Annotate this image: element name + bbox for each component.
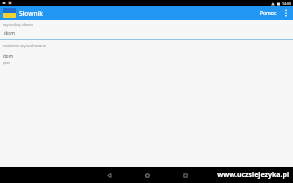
staticText: www.uczsiejezyka.pl [217, 170, 289, 180]
staticText: dom [4, 30, 15, 37]
staticText: 14:05 [282, 1, 291, 6]
button[interactable]: More options [281, 6, 291, 20]
staticText: дім [3, 60, 10, 66]
button[interactable]: App icon [3, 8, 16, 18]
button[interactable]: dom [0, 52, 293, 67]
staticText: Pomoc [260, 10, 277, 17]
button[interactable]: Home [134, 167, 160, 183]
button[interactable]: Pomoc [258, 8, 279, 19]
staticText: ostatnio wyszukiwane [3, 43, 47, 49]
button[interactable]: Recent apps [172, 167, 198, 183]
staticText: Słownik [19, 9, 43, 18]
staticText: wyszukaj słowo [3, 22, 34, 28]
button[interactable]: dom [0, 30, 293, 40]
button[interactable]: Back [96, 167, 122, 183]
staticText: dom [3, 53, 14, 59]
